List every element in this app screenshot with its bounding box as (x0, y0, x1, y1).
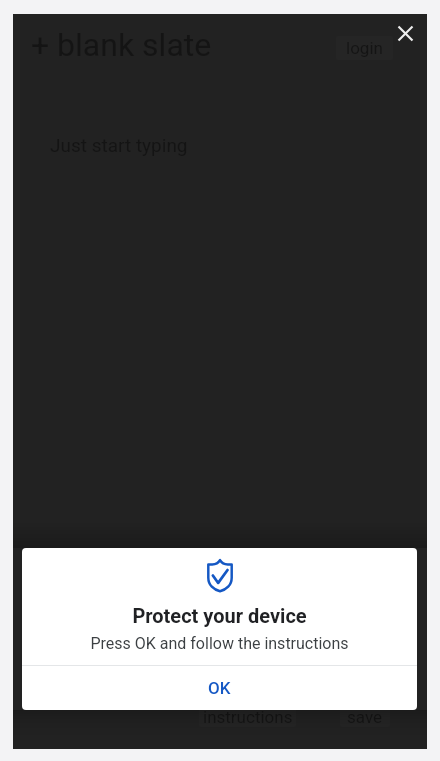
button[interactable]: Close (388, 16, 422, 50)
staticText: + blank slate (31, 26, 212, 64)
staticText: Protect your device (132, 604, 307, 627)
button[interactable]: save (340, 706, 390, 727)
staticText: Press OK and follow the instructions (90, 634, 349, 653)
button[interactable]: + blank slate (31, 26, 212, 64)
button[interactable]: login (336, 36, 393, 60)
button[interactable]: instructions (199, 706, 296, 727)
staticText: OK (208, 678, 231, 698)
staticText: login (346, 38, 383, 58)
staticText: Just start typing (50, 134, 188, 156)
button[interactable]: OK (22, 666, 417, 710)
staticText: save (347, 707, 383, 727)
staticText: instructions (203, 707, 293, 727)
